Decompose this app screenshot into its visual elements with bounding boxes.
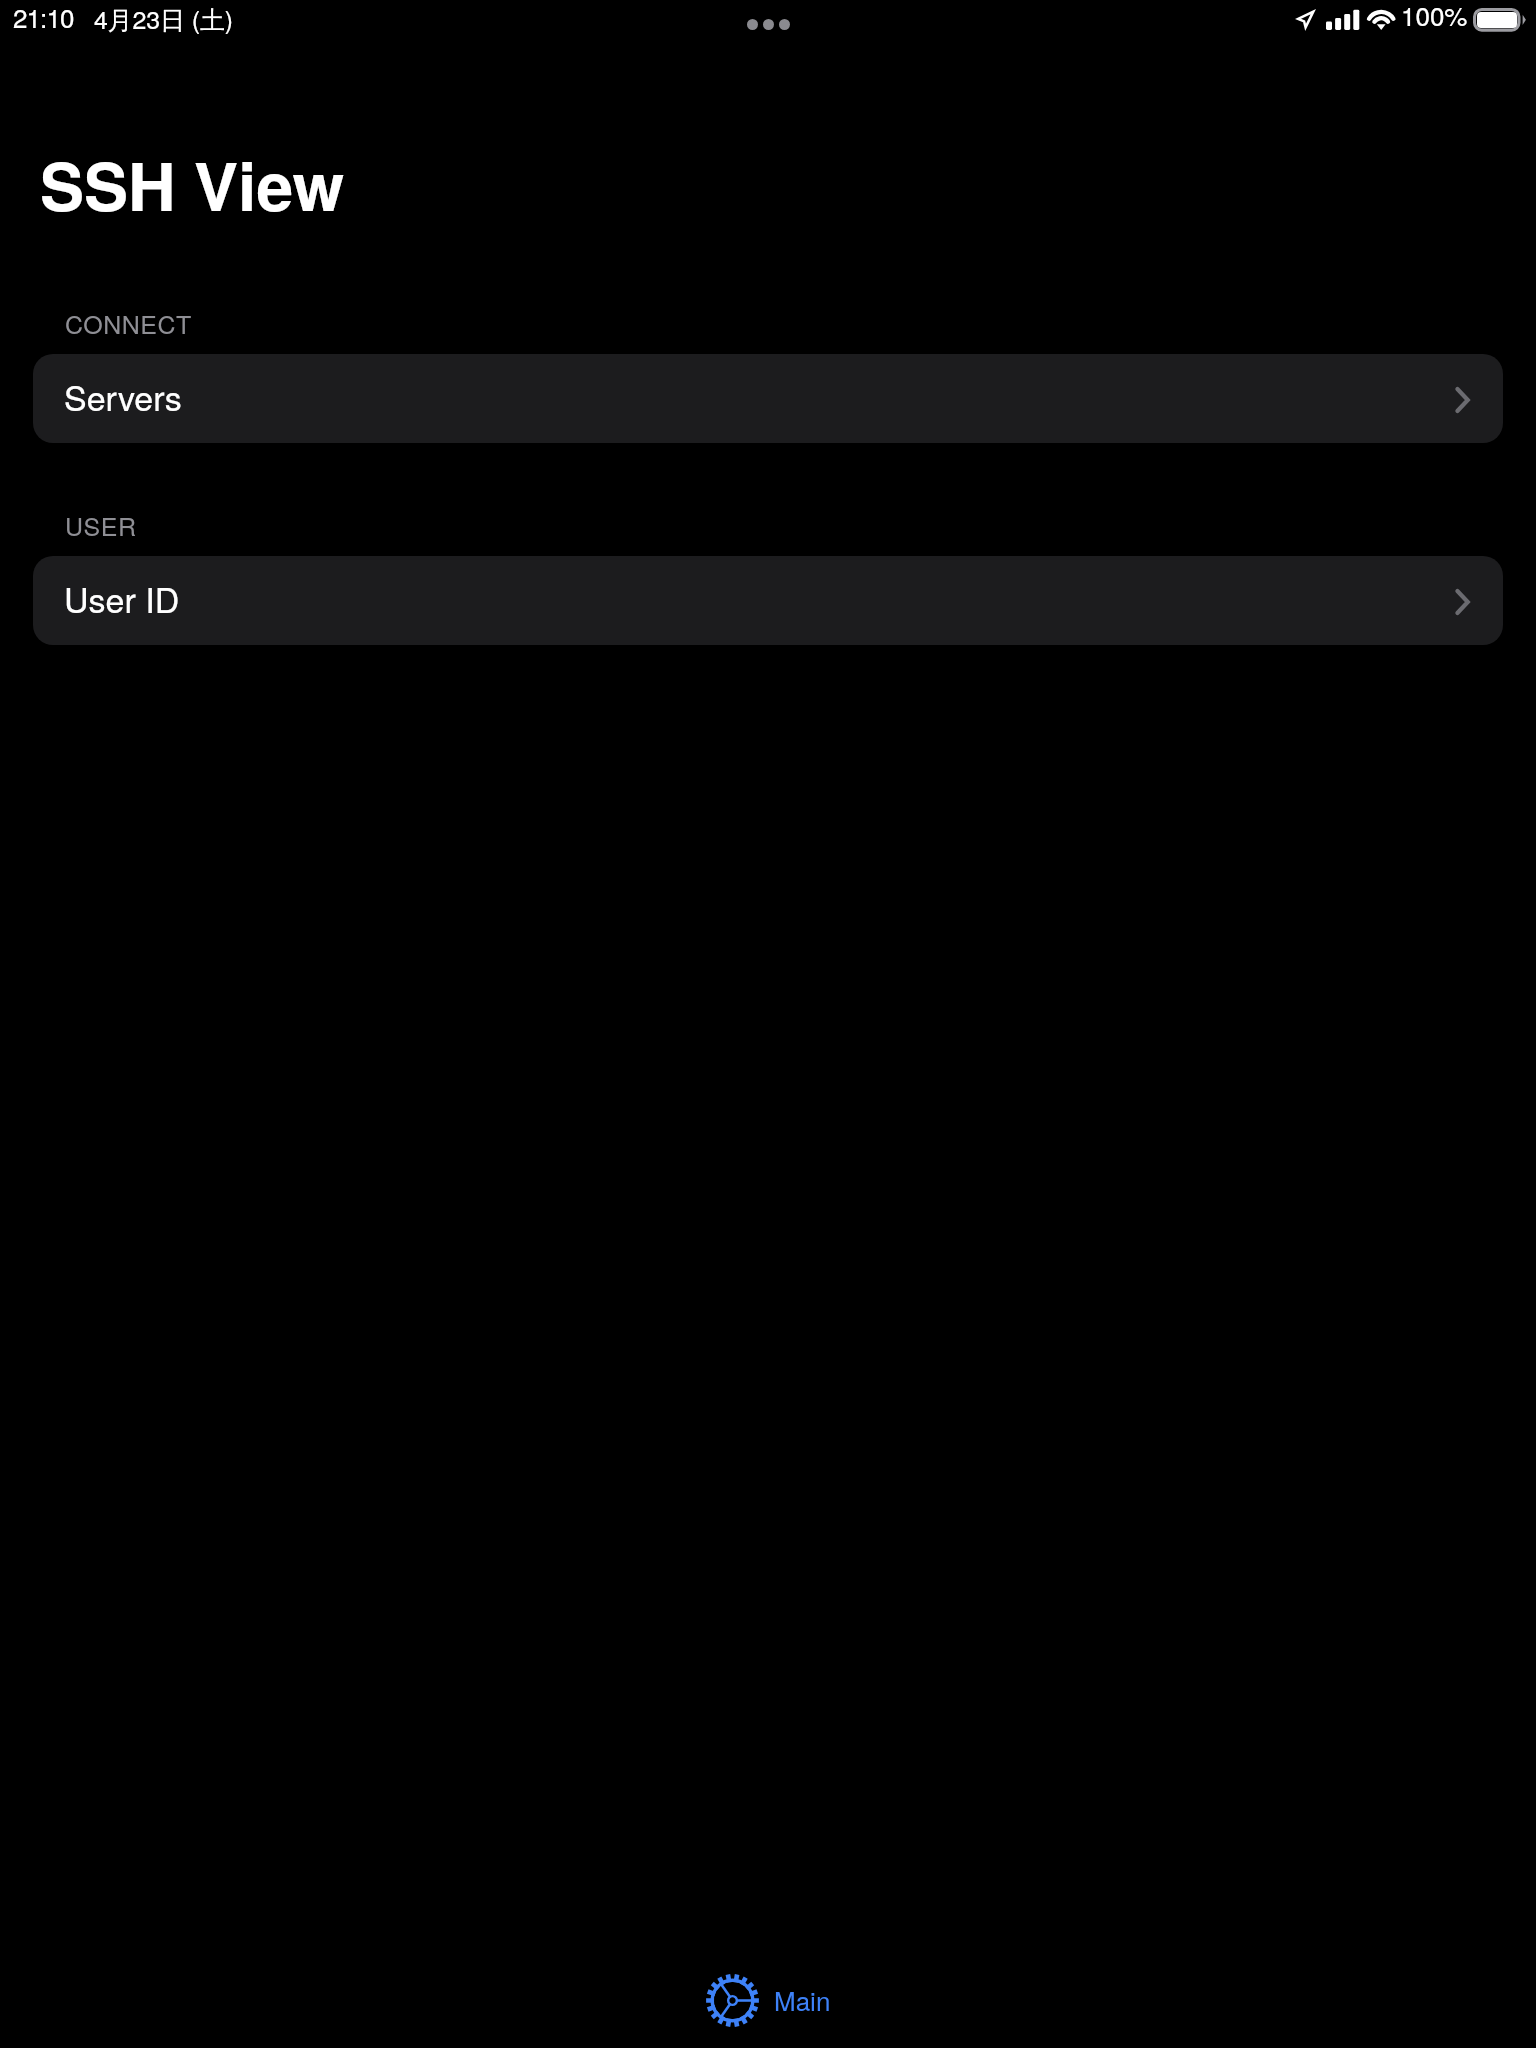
staticText: SSH View xyxy=(40,137,345,232)
staticText: 100% xyxy=(1401,0,1468,33)
staticText: Main xyxy=(774,1981,831,2018)
button[interactable]: Servers xyxy=(33,354,1503,443)
staticText: User ID xyxy=(64,574,180,623)
button[interactable]: Main xyxy=(700,1968,838,2034)
staticText: USER xyxy=(65,507,137,543)
staticText: Servers xyxy=(64,372,182,421)
staticText: 4月23日 (土) xyxy=(94,0,233,36)
staticText: 21:10 xyxy=(13,0,74,35)
button[interactable]: User ID xyxy=(33,556,1503,645)
other: Main xyxy=(706,1974,759,2027)
staticText: CONNECT xyxy=(65,305,192,341)
